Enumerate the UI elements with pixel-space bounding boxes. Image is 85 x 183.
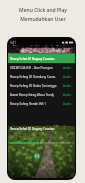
staticText: Resep Sehng ID Bulan Tarrarigga (10, 84, 57, 88)
staticText: Audio (63, 102, 72, 106)
staticText: Audio (63, 75, 72, 79)
staticText: Resep Sehat ID Bagusy Caucian (10, 57, 55, 61)
staticText: Audio (63, 93, 72, 97)
staticText: Resep Sahng Ronde Vdt 1 (10, 102, 46, 106)
staticText: Memudahkan User (20, 16, 66, 23)
button[interactable]: Aswei Resep Sateg Afzua Tandy (8, 90, 75, 99)
staticText: Audio (63, 84, 72, 88)
staticText: 9:41 (10, 41, 16, 45)
button[interactable]: Resep Sahng Ronde Vdt 1 (8, 99, 75, 108)
staticText: Menu Click and Play (19, 7, 67, 14)
staticText: XIICAPI-DA IHE - Ikan Prangan (10, 66, 53, 70)
staticText: Audio (63, 66, 72, 70)
button[interactable]: XIICAPI-DA IHE - Ikan Prangan (8, 63, 75, 72)
staticText: Aswei Resep Sateg Afzua Tandy (10, 93, 55, 97)
staticText: Resep Sehat ID Bagusy Caucian (10, 127, 55, 131)
staticText: Resep Sehng ID Dandung Cacau (10, 75, 56, 79)
button[interactable]: Resep Sehat ID Bagusy Caucian (8, 54, 75, 63)
button[interactable]: Resep Sehng ID Dandung Cacau (8, 72, 75, 81)
button[interactable]: Resep Sehng ID Bulan Tarrarigga (8, 81, 75, 90)
button[interactable]: Pause (34, 153, 40, 159)
